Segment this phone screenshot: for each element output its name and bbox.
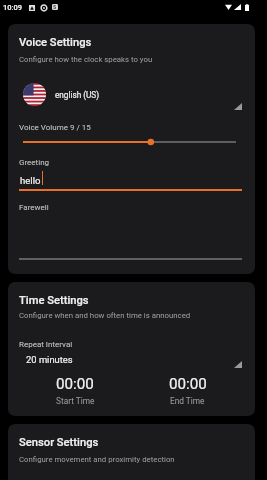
staticText: Configure when and how often time is ann… xyxy=(19,311,191,320)
staticText: Voice Settings xyxy=(19,36,92,49)
button[interactable] xyxy=(19,213,242,260)
button[interactable]: Voice Settings xyxy=(8,24,255,274)
button[interactable]: Select repeat interval xyxy=(19,352,255,376)
staticText: Sensor Settings xyxy=(19,436,99,449)
staticText: 20 minutes xyxy=(26,354,73,365)
button[interactable]: Voice volume slider xyxy=(23,136,236,148)
staticText: Start Time xyxy=(56,396,95,406)
button[interactable]: Time Settings xyxy=(8,282,255,416)
button[interactable]: hello xyxy=(19,168,242,191)
button[interactable]: 00:00 xyxy=(131,375,244,406)
staticText: Repeat Interval xyxy=(19,340,73,349)
staticText: Configure how the clock speaks to you xyxy=(19,55,153,64)
staticText: Farewell xyxy=(19,203,49,212)
button[interactable]: Sensor Settings xyxy=(8,424,255,480)
staticText: 00:00 xyxy=(169,375,207,393)
staticText: Configure movement and proximity detecti… xyxy=(19,455,175,464)
staticText: english (US) xyxy=(55,90,100,100)
staticText: S xyxy=(53,4,57,10)
staticText: End Time xyxy=(170,396,205,406)
staticText: 10:09 xyxy=(3,3,23,12)
staticText: Voice Volume 9 / 15 xyxy=(19,123,91,132)
button[interactable]: Select language xyxy=(19,77,255,105)
staticText: hello xyxy=(20,175,41,186)
staticText: Greeting xyxy=(19,158,50,167)
staticText: Time Settings xyxy=(19,294,89,307)
button[interactable]: 00:00 xyxy=(19,375,131,406)
staticText: 00:00 xyxy=(56,375,94,393)
